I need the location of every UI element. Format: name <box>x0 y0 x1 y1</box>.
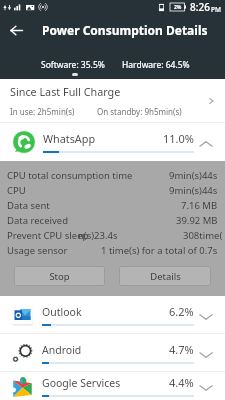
button[interactable]: Outlook <box>0 296 225 333</box>
staticText: PM <box>211 5 221 14</box>
staticText: 9min(s)44s <box>169 169 218 182</box>
button[interactable]: Expand <box>199 348 213 362</box>
staticText: Software: 35.5% <box>41 59 105 71</box>
staticText: Android <box>42 343 82 357</box>
staticText: Prevent CPU sleep <box>7 229 89 242</box>
staticText: 7.16 MB <box>181 199 218 212</box>
button[interactable]: Stop <box>14 266 105 286</box>
staticText: Hardware: 64.5% <box>122 59 190 71</box>
button[interactable]: Expand <box>199 310 213 324</box>
staticText: Data received <box>7 214 68 227</box>
staticText: Since Last Full Charge <box>10 84 121 99</box>
button[interactable]: Back <box>0 14 33 46</box>
staticText: Google Services <box>42 376 121 390</box>
staticText: 11.0% <box>163 131 194 146</box>
button[interactable]: Collapse <box>199 137 213 151</box>
staticText: On standby: 9h5min(s) <box>97 106 182 117</box>
button[interactable]: Details <box>119 266 211 286</box>
staticText: Data sent <box>7 199 50 212</box>
staticText: 2% <box>174 4 182 11</box>
button[interactable]: Android <box>0 334 225 371</box>
button[interactable]: Expand <box>199 381 213 395</box>
staticText: 4.4% <box>169 375 194 390</box>
staticText: WhatsApp <box>43 131 96 146</box>
staticText: 6.2% <box>169 304 194 319</box>
staticText: Outlook <box>42 305 82 319</box>
staticText: 1 time(s) for a total of 0.7s <box>101 244 218 257</box>
staticText: CPU <box>7 184 26 197</box>
staticText: n(s)23.4s <box>78 229 118 242</box>
staticText: Usage sensor <box>7 244 68 257</box>
staticText: 39.92 MB <box>176 214 218 227</box>
staticText: Power Consumption Details <box>42 22 208 38</box>
button[interactable]: WhatsApp <box>0 123 225 161</box>
staticText: 4.7% <box>169 342 194 357</box>
button[interactable]: Google Services <box>0 372 225 400</box>
staticText: CPU total consumption time <box>7 169 133 182</box>
button[interactable]: Since Last Full Charge <box>0 79 225 122</box>
staticText: 8:26 <box>190 0 210 14</box>
staticText: 9min(s)44s <box>169 184 218 197</box>
staticText: In use: 2h5min(s) <box>10 106 75 117</box>
staticText: 308time( <box>183 229 223 242</box>
staticText: Details <box>150 270 181 283</box>
staticText: Stop <box>49 270 70 283</box>
